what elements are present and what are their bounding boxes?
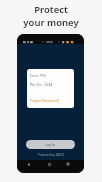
staticText: Protect bbox=[34, 3, 68, 16]
staticText: your money bbox=[23, 16, 79, 29]
button[interactable]: Log In bbox=[26, 140, 75, 149]
button[interactable]: Recent apps bbox=[64, 160, 72, 168]
staticText: Powered by ABCD bbox=[38, 153, 64, 157]
staticText: Enter PIN bbox=[30, 73, 47, 78]
staticText: Pin Co. 1234 bbox=[30, 82, 53, 87]
button[interactable]: Forgot Password? bbox=[30, 98, 60, 103]
button[interactable]: Enter PIN bbox=[27, 69, 74, 108]
button[interactable]: Home bbox=[45, 160, 53, 168]
staticText: Log In bbox=[45, 142, 56, 147]
button[interactable]: Back bbox=[24, 160, 32, 168]
